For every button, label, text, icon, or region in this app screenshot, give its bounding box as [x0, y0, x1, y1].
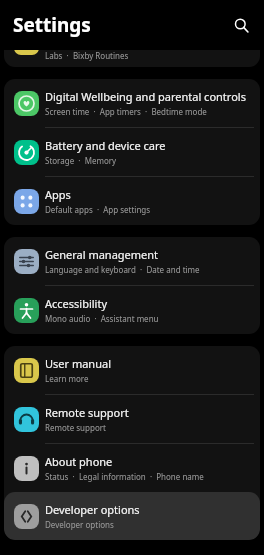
staticText: Developer options — [45, 519, 114, 530]
staticText: Storage · Memory — [45, 155, 117, 166]
staticText: User manual — [45, 356, 111, 371]
staticText: Digital Wellbeing and parental controls — [45, 89, 246, 104]
staticText: General management — [45, 247, 159, 262]
staticText: Language and keyboard · Date and time — [45, 264, 200, 275]
staticText: Settings — [13, 12, 91, 38]
button[interactable]: General management — [4, 237, 260, 285]
staticText: Apps — [45, 187, 71, 202]
staticText: Learn more — [45, 373, 89, 384]
button[interactable]: About phone — [4, 444, 260, 492]
button[interactable]: Digital Wellbeing and parental controls — [4, 79, 260, 127]
button[interactable]: Developer options — [4, 492, 260, 540]
button[interactable]: Labs · Bixby Routines — [4, 50, 260, 67]
staticText: Screen time · App timers · Bedtime mode — [45, 106, 207, 117]
button[interactable]: Search — [227, 11, 255, 39]
staticText: Battery and device care — [45, 138, 166, 153]
staticText: Remote support — [45, 405, 129, 420]
button[interactable]: Remote support — [4, 395, 260, 443]
staticText: Developer options — [45, 502, 140, 517]
staticText: About phone — [45, 454, 113, 469]
staticText: Status · Legal information · Phone name — [45, 471, 204, 482]
staticText: Labs · Bixby Routines — [45, 50, 129, 61]
staticText: Mono audio · Assistant menu — [45, 313, 159, 324]
button[interactable]: Accessibility — [4, 286, 260, 334]
staticText: Accessibility — [45, 296, 108, 311]
staticText: Default apps · App settings — [45, 204, 151, 215]
button[interactable]: Apps — [4, 177, 260, 225]
staticText: Remote support — [45, 422, 106, 433]
button[interactable]: Battery and device care — [4, 128, 260, 176]
button[interactable]: User manual — [4, 346, 260, 394]
